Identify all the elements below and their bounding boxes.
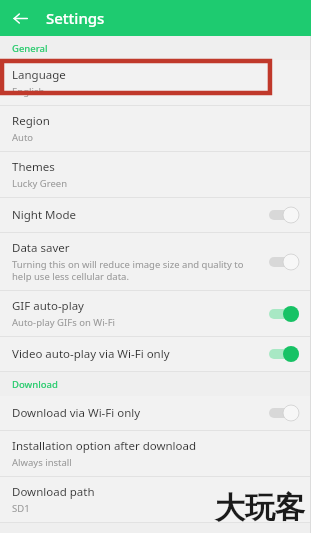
button[interactable]: Video auto-play via Wi-Fi only [0, 337, 311, 371]
staticText: Auto [12, 131, 34, 144]
button[interactable]: Themes [0, 152, 311, 197]
button[interactable]: Download via Wi-Fi only [0, 396, 311, 430]
button[interactable]: Night Mode toggle [267, 205, 301, 225]
staticText: Video auto-play via Wi-Fi only [12, 346, 170, 362]
staticText: Turning this on will reduce image size a… [12, 258, 261, 283]
button[interactable]: Installation option after download [0, 431, 311, 476]
staticText: GIF auto-play [12, 298, 84, 314]
staticText: 大玩客 [215, 489, 305, 527]
button[interactable]: Data saver [0, 233, 311, 290]
staticText: Auto-play GIFs on Wi-Fi [12, 316, 116, 329]
button[interactable]: Language [0, 60, 311, 105]
staticText: Region [12, 113, 50, 129]
staticText: SD1 [12, 502, 30, 515]
staticText: Data saver [12, 240, 70, 256]
button[interactable]: Download path [0, 477, 311, 522]
staticText: Always install [12, 456, 72, 469]
staticText: Download [12, 378, 58, 391]
button[interactable]: GIF auto-play [0, 291, 311, 336]
button[interactable]: GIF auto-play toggle [267, 304, 301, 324]
staticText: Lucky Green [12, 177, 68, 190]
button[interactable]: Night Mode [0, 198, 311, 232]
staticText: English [12, 85, 45, 98]
staticText: Settings [46, 8, 105, 28]
button[interactable]: Region [0, 106, 311, 151]
button[interactable]: Video auto-play via Wi-Fi only toggle [267, 344, 301, 364]
button[interactable]: Back [6, 4, 34, 32]
staticText: Night Mode [12, 207, 76, 223]
staticText: Themes [12, 159, 55, 175]
button[interactable]: Download via Wi-Fi only toggle [267, 403, 301, 423]
staticText: Download path [12, 484, 95, 500]
staticText: Installation option after download [12, 438, 197, 454]
staticText: General [12, 42, 48, 55]
staticText: Download via Wi-Fi only [12, 405, 141, 421]
button[interactable]: Data saver toggle [267, 252, 301, 272]
staticText: Language [12, 67, 66, 83]
